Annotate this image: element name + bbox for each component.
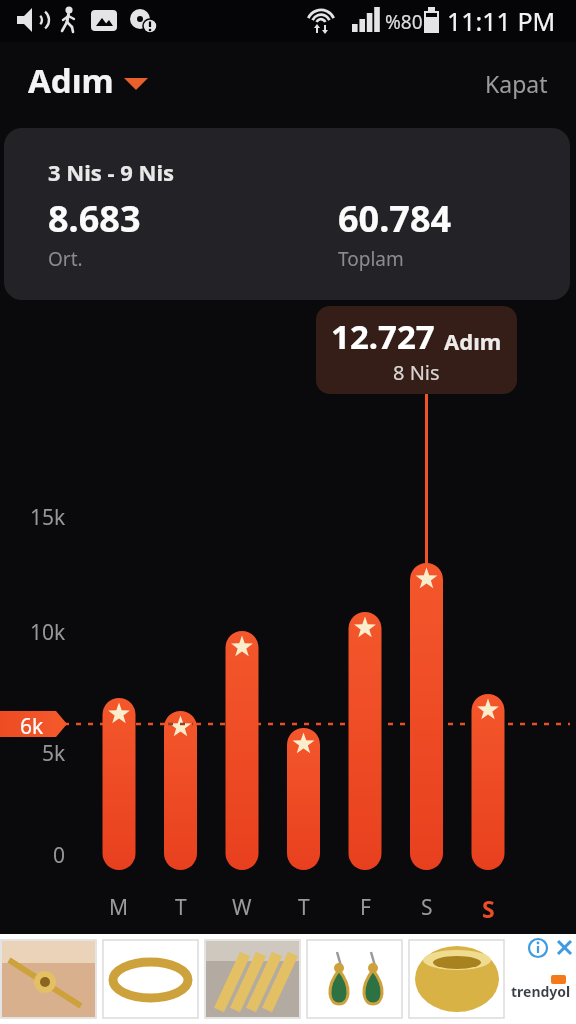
staticText: 5k [42, 739, 66, 768]
staticText: W [232, 893, 252, 922]
staticText: 0 [53, 841, 66, 870]
button[interactable]: 3 Nis - 9 Nis [4, 128, 570, 300]
button[interactable]: Adım [28, 58, 148, 103]
staticText: Adım [444, 326, 502, 356]
staticText: Ort. [48, 246, 83, 272]
staticText: %80 [385, 9, 423, 35]
staticText: 12.727 [331, 314, 435, 359]
staticText: Toplam [338, 246, 404, 272]
staticText: 15k [30, 503, 66, 532]
staticText: F [360, 893, 371, 922]
staticText: 11:11 PM [447, 4, 556, 38]
staticText: M [109, 893, 129, 922]
staticText: 10k [30, 618, 66, 647]
staticText: S [421, 893, 433, 922]
staticText: T [298, 893, 310, 922]
staticText: 60.784 [338, 194, 452, 243]
staticText: Kapat [485, 68, 548, 99]
staticText: S [482, 893, 495, 924]
staticText: 3 Nis - 9 Nis [48, 157, 175, 187]
button[interactable]: 12.727 [316, 306, 517, 394]
staticText: Adım [28, 58, 114, 103]
staticText: 8 Nis [393, 359, 440, 386]
staticText: 8.683 [48, 194, 141, 243]
button[interactable]: Kapat [485, 68, 548, 99]
button[interactable]: trendyol [0, 934, 576, 1024]
staticText: trendyol [511, 982, 571, 1001]
staticText: T [175, 893, 187, 922]
staticText: 6k [20, 712, 44, 741]
